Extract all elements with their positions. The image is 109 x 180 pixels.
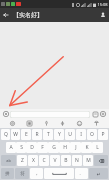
button[interactable]: ↵ [89, 168, 108, 179]
staticText: U [68, 131, 72, 138]
staticText: V [53, 157, 57, 164]
button[interactable]: O [87, 129, 97, 140]
button[interactable]: S [16, 142, 26, 153]
button[interactable]: C [39, 155, 49, 166]
staticText: F [41, 144, 44, 151]
staticText: Y [58, 131, 61, 138]
button[interactable]: I [76, 129, 86, 140]
staticText: Q [4, 131, 8, 138]
button[interactable]: A [6, 142, 16, 153]
button[interactable]: Q [1, 129, 10, 140]
staticText: R [35, 131, 39, 138]
button[interactable]: L [92, 142, 103, 153]
staticText: X [32, 157, 35, 164]
staticText: N [75, 157, 79, 164]
staticText: 符 [20, 171, 25, 177]
button[interactable]: Back [0, 9, 12, 21]
staticText: 15:08 [97, 2, 108, 7]
button[interactable]: , [30, 168, 43, 179]
button[interactable]: T [43, 129, 53, 140]
staticText: S [20, 144, 23, 151]
staticText: E [25, 131, 28, 138]
staticText: I [80, 131, 82, 138]
button[interactable]: F [37, 142, 48, 153]
button[interactable]: Space [44, 168, 74, 179]
staticText: 拼 [5, 171, 10, 177]
staticText: L [96, 144, 99, 151]
button[interactable]: Gallery [25, 119, 34, 128]
button[interactable]: ab [1, 155, 16, 166]
button[interactable]: 【实名好】 [13, 11, 43, 19]
button[interactable]: Location [58, 119, 67, 128]
button[interactable]: Gift [92, 119, 101, 128]
staticText: 。 [79, 171, 84, 177]
button[interactable]: 拼 [1, 168, 14, 179]
button[interactable]: X [28, 155, 38, 166]
button[interactable]: Contact info [97, 9, 109, 21]
staticText: J [75, 144, 77, 151]
button[interactable] [10, 111, 90, 118]
staticText: ab [6, 158, 11, 163]
button[interactable]: Y [54, 129, 64, 140]
button[interactable]: More options [99, 110, 107, 118]
staticText: B [64, 157, 68, 164]
button[interactable]: P [98, 129, 108, 140]
button[interactable]: Voice input [2, 110, 10, 118]
button[interactable]: G [48, 142, 59, 153]
staticText: D [30, 144, 34, 151]
staticText: P [101, 131, 105, 138]
button[interactable]: M [83, 155, 93, 166]
button[interactable]: Voice call [42, 119, 51, 128]
staticText: C [42, 157, 46, 164]
staticText: W [13, 131, 18, 138]
button[interactable]: Z [17, 155, 27, 166]
staticText: G [52, 144, 56, 151]
button[interactable]: D [26, 142, 37, 153]
button[interactable]: N [72, 155, 82, 166]
button[interactable]: Emoji [91, 110, 99, 118]
button[interactable]: 符 [15, 168, 29, 179]
staticText: K [85, 144, 89, 151]
staticText: M [86, 157, 91, 164]
button[interactable]: W [11, 129, 20, 140]
button[interactable]: R [32, 129, 42, 140]
button[interactable]: E [21, 129, 31, 140]
staticText: O [90, 131, 94, 138]
staticText: ↵ [96, 171, 101, 177]
staticText: Z [21, 157, 24, 164]
staticText: T [47, 131, 50, 138]
button[interactable]: 。 [75, 168, 88, 179]
staticText: A [9, 144, 13, 151]
staticText: H [63, 144, 67, 151]
button[interactable]: Backspace [94, 155, 108, 166]
button[interactable]: Sticker [75, 119, 84, 128]
staticText: , [36, 170, 38, 177]
button[interactable]: K [81, 142, 92, 153]
button[interactable]: V [50, 155, 60, 166]
button[interactable]: J [70, 142, 81, 153]
button[interactable]: H [59, 142, 70, 153]
button[interactable]: Camera [8, 119, 17, 128]
staticText: 【实名好】 [13, 11, 43, 19]
button[interactable]: U [65, 129, 75, 140]
button[interactable]: B [61, 155, 71, 166]
